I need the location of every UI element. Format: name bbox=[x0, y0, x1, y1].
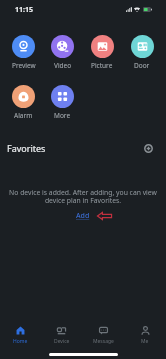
button[interactable]: More bbox=[43, 85, 82, 120]
staticText: 11:15 bbox=[15, 5, 33, 15]
button[interactable]: Add device bbox=[141, 141, 155, 155]
button[interactable]: Device bbox=[41, 326, 82, 345]
button[interactable]: Video bbox=[43, 35, 82, 70]
staticText: Door bbox=[134, 61, 150, 70]
staticText: More bbox=[54, 111, 71, 120]
staticText: Picture bbox=[91, 61, 113, 70]
staticText: No device is added. After adding, you ca… bbox=[9, 188, 157, 205]
staticText: Device bbox=[54, 338, 70, 345]
button[interactable]: Add bbox=[76, 211, 90, 220]
staticText: Me bbox=[141, 338, 149, 345]
staticText: Add bbox=[76, 211, 90, 220]
staticText: Favorites bbox=[7, 142, 46, 154]
button[interactable]: Alarm bbox=[4, 85, 43, 120]
button[interactable]: Door bbox=[122, 35, 162, 70]
staticText: Home bbox=[13, 338, 28, 345]
button[interactable]: Home bbox=[0, 326, 41, 345]
staticText: Video bbox=[54, 61, 72, 70]
button[interactable]: Picture bbox=[82, 35, 122, 70]
staticText: Preview bbox=[12, 61, 36, 70]
button[interactable]: Me bbox=[124, 326, 166, 345]
staticText: Alarm bbox=[14, 111, 33, 120]
button[interactable]: Message bbox=[82, 326, 124, 345]
button[interactable]: Preview bbox=[4, 35, 43, 70]
staticText: Message bbox=[93, 338, 114, 345]
